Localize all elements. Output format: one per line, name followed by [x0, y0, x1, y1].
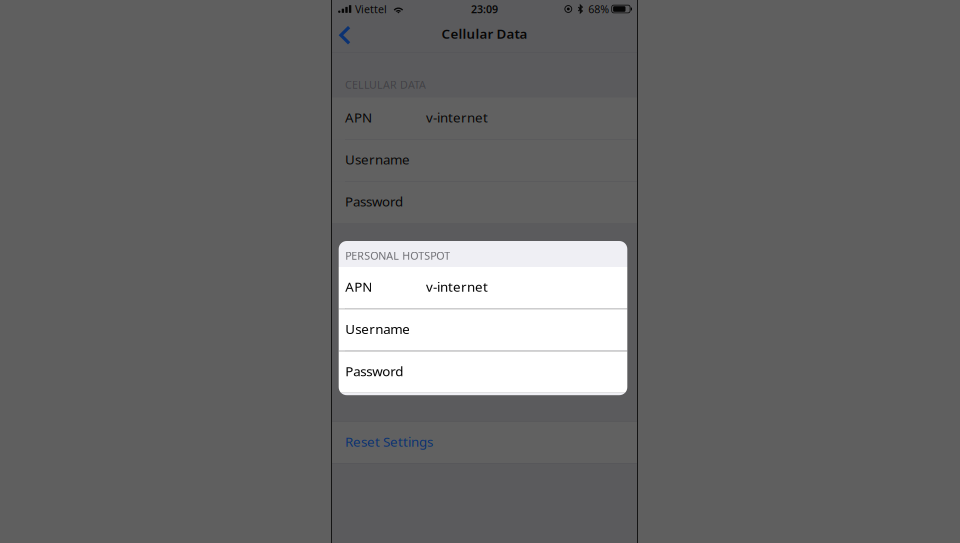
staticText: Password: [345, 192, 403, 210]
staticText: Username: [345, 320, 410, 338]
staticText: v-internet: [426, 278, 488, 295]
staticText: Username: [345, 150, 410, 168]
button[interactable]: Password: [332, 182, 637, 223]
staticText: 68%: [588, 2, 609, 16]
button[interactable]: Reset Settings: [332, 422, 637, 463]
button[interactable]: Back: [332, 18, 358, 52]
staticText: 23:09: [471, 2, 498, 16]
staticText: APN: [345, 278, 372, 295]
staticText: Reset Settings: [345, 433, 433, 450]
staticText: v-internet: [426, 108, 488, 126]
button[interactable]: Password: [339, 351, 627, 393]
staticText: Viettel: [355, 2, 387, 16]
button[interactable]: Username: [332, 140, 637, 181]
button[interactable]: APN: [339, 267, 627, 308]
staticText: CELLULAR DATA: [345, 78, 426, 92]
staticText: APN: [345, 108, 372, 126]
button[interactable]: APN: [332, 98, 637, 139]
staticText: Password: [345, 362, 403, 380]
staticText: Cellular Data: [441, 25, 527, 42]
button[interactable]: Username: [339, 309, 627, 351]
staticText: PERSONAL HOTSPOT: [345, 248, 450, 263]
